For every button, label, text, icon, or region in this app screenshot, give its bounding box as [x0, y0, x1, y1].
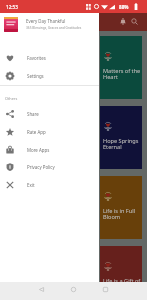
- staticText: Hope Springs Eternal: [103, 137, 141, 151]
- button[interactable]: Search: [127, 14, 141, 28]
- staticText: Others: [5, 96, 18, 101]
- staticText: Matters of the Heart: [103, 67, 141, 81]
- button[interactable]: Share: [0, 105, 99, 123]
- staticText: Exit: [27, 182, 35, 188]
- staticText: 12:53: [6, 4, 18, 10]
- button[interactable]: Life is in Full Bloom: [100, 176, 142, 239]
- button[interactable]: Hope Springs Eternal: [100, 106, 142, 169]
- staticText: 88%: [119, 4, 129, 10]
- staticText: Life is in Full Bloom: [103, 207, 141, 221]
- staticText: Favorites: [27, 55, 46, 61]
- button[interactable]: Rate App: [0, 123, 99, 141]
- button[interactable]: Favorites: [0, 49, 99, 67]
- button[interactable]: Matters of the Heart: [100, 36, 142, 99]
- staticText: 365 Blessings, Graces and Gratitudes: [26, 26, 82, 30]
- staticText: Privacy Policy: [27, 164, 55, 170]
- button[interactable]: Notifications: [116, 14, 130, 28]
- staticText: Life is a Gift of Love: [103, 277, 141, 291]
- button[interactable]: More Apps: [0, 141, 99, 159]
- button[interactable]: Settings: [0, 67, 99, 85]
- staticText: Settings: [27, 73, 44, 79]
- button[interactable]: Recents: [99, 283, 111, 295]
- button[interactable]: Life is a Gift of Love: [100, 246, 142, 300]
- button[interactable]: Privacy Policy: [0, 158, 99, 176]
- button[interactable]: Home: [67, 283, 79, 295]
- staticText: Share: [27, 111, 39, 117]
- staticText: More Apps: [27, 147, 50, 153]
- button[interactable]: Back: [35, 283, 47, 295]
- button[interactable]: Exit: [0, 176, 99, 194]
- staticText: Every Day Thankful: [26, 18, 66, 24]
- staticText: Rate App: [27, 129, 46, 135]
